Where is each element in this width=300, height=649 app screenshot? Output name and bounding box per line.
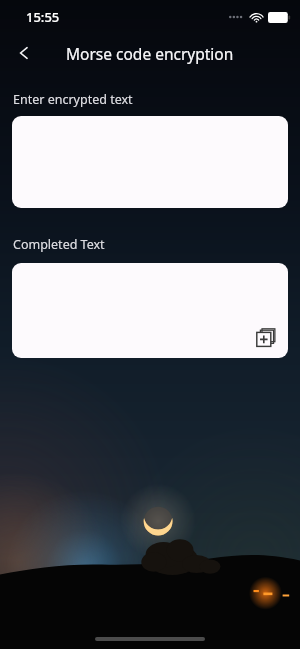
button[interactable]	[12, 116, 288, 208]
staticText: Morse code encryption	[66, 43, 234, 64]
staticText: Completed Text	[13, 236, 105, 253]
staticText: Enter encrypted text	[13, 91, 133, 108]
button[interactable]: Back	[4, 34, 44, 72]
button[interactable]: Copy text	[12, 263, 288, 358]
button[interactable]: Copy text	[252, 324, 280, 352]
staticText: 15:55	[26, 8, 60, 26]
